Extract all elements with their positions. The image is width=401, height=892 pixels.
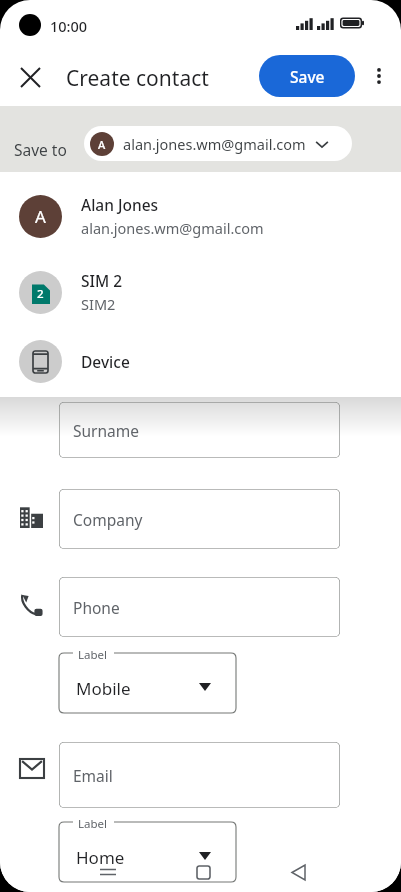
button[interactable]: Close [10,57,50,97]
button[interactable]: Surname [59,402,340,458]
button[interactable]: Phone [59,577,340,637]
staticText: Save to [14,139,67,160]
button[interactable]: Save [259,55,355,97]
button[interactable]: Label [59,653,236,713]
button[interactable]: Email [59,742,340,808]
button[interactable]: Company [59,489,340,549]
button[interactable]: Home [183,858,223,886]
staticText: Mobile [76,677,131,700]
staticText: Save [290,66,325,87]
staticText: Phone [73,597,120,618]
button[interactable]: Device [0,332,401,390]
button[interactable]: More options [360,57,398,95]
staticText: Create contact [66,64,209,93]
button[interactable]: 2 [0,256,401,328]
staticText: Device [81,351,130,372]
staticText: Label [78,647,108,663]
staticText: Email [73,765,113,786]
button[interactable]: Recent apps [88,858,128,886]
staticText: Alan Jones [81,194,159,215]
staticText: alan.jones.wm@gmail.com [81,218,264,238]
staticText: SIM2 [81,294,116,314]
button[interactable]: A [0,180,401,252]
button[interactable]: Back [278,858,318,886]
staticText: Company [73,509,143,530]
staticText: 2 [37,286,44,302]
button[interactable]: A [84,126,352,161]
staticText: Label [78,816,108,832]
staticText: Home [76,846,125,869]
staticText: Surname [73,420,139,441]
staticText: SIM 2 [81,270,123,291]
staticText: 10:00 [50,16,88,36]
staticText: A [98,137,106,152]
staticText: A [35,205,46,228]
staticText: alan.jones.wm@gmail.com [123,134,306,154]
button[interactable]: Label [59,822,236,882]
